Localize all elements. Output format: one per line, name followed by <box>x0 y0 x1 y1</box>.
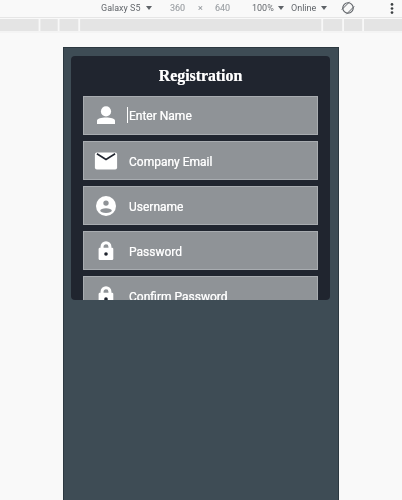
button[interactable]: Confirm Password <box>84 277 317 300</box>
button[interactable]: Enter Name <box>84 97 317 134</box>
button[interactable]: Username <box>84 187 317 224</box>
staticText: Enter Name <box>129 109 192 123</box>
staticText: 360 <box>170 3 186 14</box>
button[interactable]: Company Email <box>84 142 317 179</box>
staticText: 100% <box>252 3 274 14</box>
staticText: Password <box>129 245 183 259</box>
button[interactable]: Password <box>84 232 317 269</box>
staticText: Registration <box>71 67 330 84</box>
staticText: Confirm Password <box>129 290 228 300</box>
button[interactable]: Network throttling disabled <box>340 0 356 16</box>
button[interactable]: Galaxy S5 <box>101 0 152 16</box>
staticText: × <box>198 3 203 14</box>
button[interactable]: 100% <box>252 0 284 16</box>
button[interactable]: Online <box>291 0 327 16</box>
staticText: 640 <box>215 3 231 14</box>
button[interactable]: More options <box>384 0 400 16</box>
staticText: Company Email <box>129 155 213 169</box>
staticText: Galaxy S5 <box>101 3 141 14</box>
staticText: Online <box>291 3 317 14</box>
staticText: Username <box>129 200 184 214</box>
